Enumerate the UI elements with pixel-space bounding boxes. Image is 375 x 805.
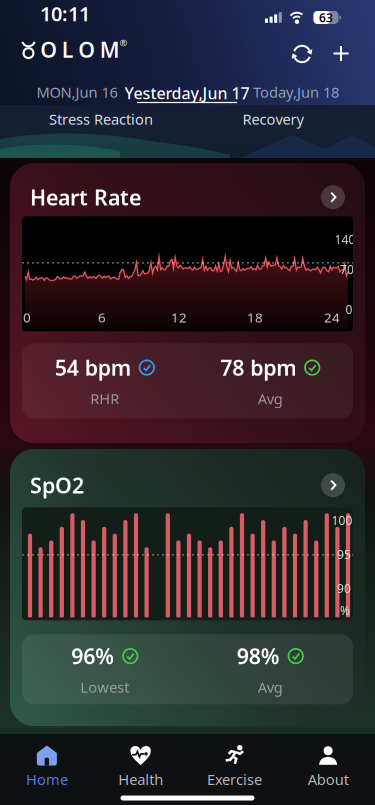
staticText: Recovery bbox=[242, 109, 303, 129]
staticText: Avg bbox=[258, 677, 283, 697]
staticText: 18 bbox=[247, 308, 263, 326]
staticText: ® bbox=[119, 37, 127, 49]
staticText: 90 bbox=[337, 580, 351, 596]
staticText: 96% bbox=[71, 642, 114, 670]
staticText: SpO2 bbox=[30, 471, 84, 499]
button[interactable]: About bbox=[281, 745, 375, 789]
button[interactable]: Today,Jun 18 bbox=[242, 79, 350, 105]
staticText: MON,Jun 16 bbox=[36, 82, 117, 102]
staticText: O bbox=[40, 35, 57, 64]
staticText: 10:11 bbox=[40, 0, 90, 27]
staticText: RHR bbox=[90, 389, 119, 408]
staticText: 63 bbox=[319, 9, 333, 25]
staticText: 6 bbox=[98, 308, 106, 326]
staticText: Avg bbox=[258, 389, 283, 408]
staticText: M bbox=[100, 35, 120, 64]
staticText: About bbox=[308, 769, 349, 789]
staticText: L bbox=[62, 35, 74, 64]
staticText: 54 bpm bbox=[55, 353, 131, 382]
staticText: 0 bbox=[23, 308, 31, 326]
staticText: Home bbox=[26, 769, 68, 789]
staticText: Yesterday,Jun 17 bbox=[124, 82, 249, 104]
staticText: Today,Jun 18 bbox=[253, 82, 339, 102]
staticText: Health bbox=[118, 769, 163, 789]
staticText: 95 bbox=[337, 546, 351, 562]
staticText: Stress Reaction bbox=[49, 109, 153, 129]
button[interactable]: Health bbox=[94, 745, 188, 789]
staticText: 12 bbox=[171, 308, 187, 326]
button[interactable]: Sync bbox=[284, 36, 320, 72]
staticText: % bbox=[340, 602, 350, 618]
staticText: 0 bbox=[345, 301, 352, 317]
staticText: 24 bbox=[324, 308, 340, 326]
staticText: Heart Rate bbox=[30, 183, 141, 211]
button[interactable]: Details bbox=[321, 473, 345, 497]
button[interactable]: Details bbox=[321, 185, 345, 209]
staticText: Exercise bbox=[207, 769, 262, 789]
staticText: 78 bpm bbox=[220, 353, 296, 382]
button[interactable]: Add bbox=[323, 35, 359, 71]
button[interactable]: Yesterday,Jun 17 bbox=[112, 80, 262, 106]
staticText: Lowest bbox=[80, 677, 129, 697]
staticText: 140 bbox=[334, 231, 355, 247]
button[interactable]: Exercise bbox=[187, 745, 281, 789]
staticText: 98% bbox=[237, 642, 280, 670]
staticText: 70 bbox=[340, 261, 354, 277]
button[interactable]: Home bbox=[0, 745, 94, 789]
staticText: 100 bbox=[331, 512, 352, 528]
button[interactable]: MON,Jun 16 bbox=[23, 79, 131, 105]
staticText: O bbox=[78, 35, 95, 64]
